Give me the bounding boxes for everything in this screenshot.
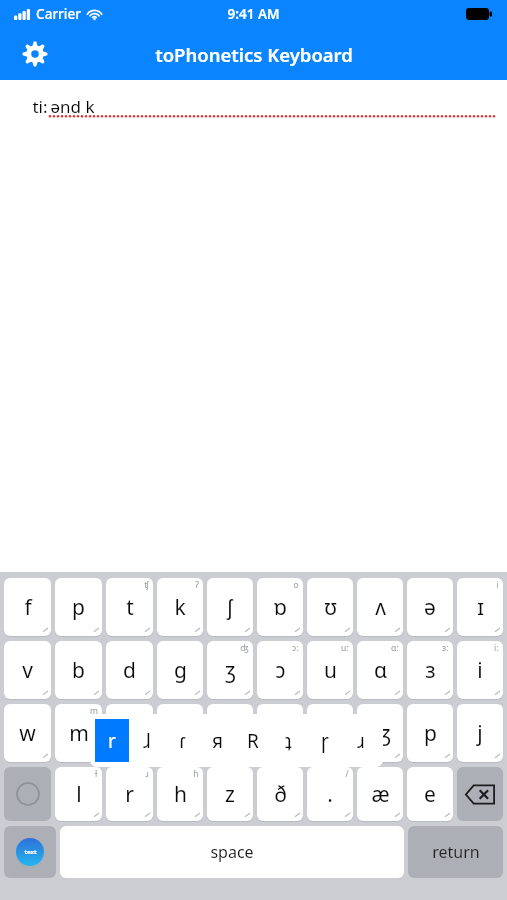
staticText: ʇ xyxy=(285,728,292,754)
staticText: ɜ xyxy=(425,656,436,685)
staticText: iː xyxy=(494,642,499,654)
button[interactable]: space xyxy=(60,826,404,878)
button[interactable]: ɹ xyxy=(343,719,378,762)
button[interactable]: r xyxy=(106,767,153,821)
staticText: ti: xyxy=(30,95,50,118)
staticText: toPhonetics Keyboard xyxy=(155,42,353,67)
staticText: uː xyxy=(341,642,349,654)
button[interactable]: p xyxy=(407,704,453,762)
staticText: text xyxy=(24,848,37,856)
button[interactable]: ɪ xyxy=(457,578,503,636)
staticText: θ xyxy=(324,719,337,748)
staticText: v xyxy=(22,656,33,685)
button[interactable]: return xyxy=(408,826,503,878)
button[interactable]: ɜ xyxy=(407,641,453,699)
staticText: ɺ xyxy=(143,728,151,754)
button[interactable]: Settings xyxy=(18,37,52,71)
button[interactable]: u xyxy=(307,641,353,699)
staticText: j xyxy=(477,719,483,748)
button[interactable]: ʇ xyxy=(271,719,306,762)
button[interactable]: v xyxy=(4,641,51,699)
button[interactable]: j xyxy=(457,704,503,762)
button[interactable]: k xyxy=(157,578,203,636)
staticText: ɑː xyxy=(391,642,399,654)
staticText: ʔ xyxy=(195,579,199,591)
staticText: ə xyxy=(424,593,436,622)
staticText: l xyxy=(76,780,82,809)
button[interactable]: n xyxy=(106,704,153,762)
button[interactable]: ɔ xyxy=(257,641,303,699)
button[interactable]: e xyxy=(407,767,453,821)
button[interactable]: ŋ xyxy=(157,704,203,762)
button[interactable]: f xyxy=(4,578,51,636)
button[interactable]: æ xyxy=(357,767,403,821)
button[interactable]: θ xyxy=(307,704,353,762)
staticText: p xyxy=(72,593,85,622)
button[interactable]: b xyxy=(55,641,102,699)
button[interactable]: ɒ xyxy=(257,578,303,636)
staticText: ʊ xyxy=(324,593,337,622)
button[interactable]: z xyxy=(207,767,253,821)
staticText: . xyxy=(327,780,333,809)
button[interactable]: t xyxy=(106,578,153,636)
button[interactable]: ə xyxy=(407,578,453,636)
button[interactable]: Switch keyboard xyxy=(4,826,56,878)
button[interactable]: i xyxy=(457,641,503,699)
button[interactable]: s xyxy=(207,704,253,762)
button[interactable]: Shift xyxy=(4,767,51,821)
staticText: ɾ xyxy=(179,728,186,754)
staticText: space xyxy=(210,841,254,863)
button[interactable]: r xyxy=(95,719,129,762)
button[interactable]: Backspace xyxy=(457,767,503,821)
staticText: ɦ xyxy=(193,768,199,780)
button[interactable]: ʊ xyxy=(307,578,353,636)
staticText: ɪ xyxy=(477,593,484,622)
staticText: ɱ xyxy=(90,705,98,717)
button[interactable]: ʒ xyxy=(207,641,253,699)
button[interactable]: . xyxy=(307,767,353,821)
staticText: я xyxy=(212,728,223,754)
button[interactable]: ɼ xyxy=(307,719,342,762)
staticText: return xyxy=(432,841,480,863)
staticText: ʒ xyxy=(225,656,236,685)
staticText: i xyxy=(496,579,499,591)
button[interactable]: ɺ xyxy=(130,719,164,762)
button[interactable]: p xyxy=(55,578,102,636)
button[interactable]: R xyxy=(235,719,270,762)
staticText: ɹ xyxy=(145,768,149,780)
staticText: i xyxy=(477,656,483,685)
button[interactable]: я xyxy=(200,719,234,762)
staticText: t xyxy=(126,593,134,622)
button[interactable]: g xyxy=(157,641,203,699)
staticText: ɔː xyxy=(292,642,299,654)
staticText: p xyxy=(424,719,437,748)
button[interactable]: d xyxy=(106,641,153,699)
staticText: ŋ xyxy=(174,719,187,748)
staticText: ɑ xyxy=(374,656,387,685)
button[interactable]: ð xyxy=(257,767,303,821)
staticText: e xyxy=(424,780,436,809)
button[interactable]: ʌ xyxy=(357,578,403,636)
staticText: ð xyxy=(274,780,287,809)
button[interactable]: h xyxy=(157,767,203,821)
button[interactable]: ʤ xyxy=(357,704,403,762)
staticText: r xyxy=(125,780,134,809)
staticText: ʧ xyxy=(275,719,286,748)
button[interactable]: ʃ xyxy=(207,578,253,636)
staticText: ʤ xyxy=(370,719,391,748)
button[interactable]: w xyxy=(4,704,51,762)
staticText: Carrier xyxy=(36,5,81,23)
button[interactable]: ɑ xyxy=(357,641,403,699)
staticText: z xyxy=(225,780,235,809)
button[interactable]: ʧ xyxy=(257,704,303,762)
staticText: g xyxy=(174,656,187,685)
staticText: u xyxy=(324,656,337,685)
staticText: f xyxy=(24,593,32,622)
staticText: m xyxy=(69,719,89,748)
button[interactable]: ɾ xyxy=(165,719,199,762)
staticText: ʤ xyxy=(240,642,249,654)
button[interactable]: m xyxy=(55,704,102,762)
button[interactable]: l xyxy=(55,767,102,821)
staticText: 9:41 AM xyxy=(227,5,280,23)
